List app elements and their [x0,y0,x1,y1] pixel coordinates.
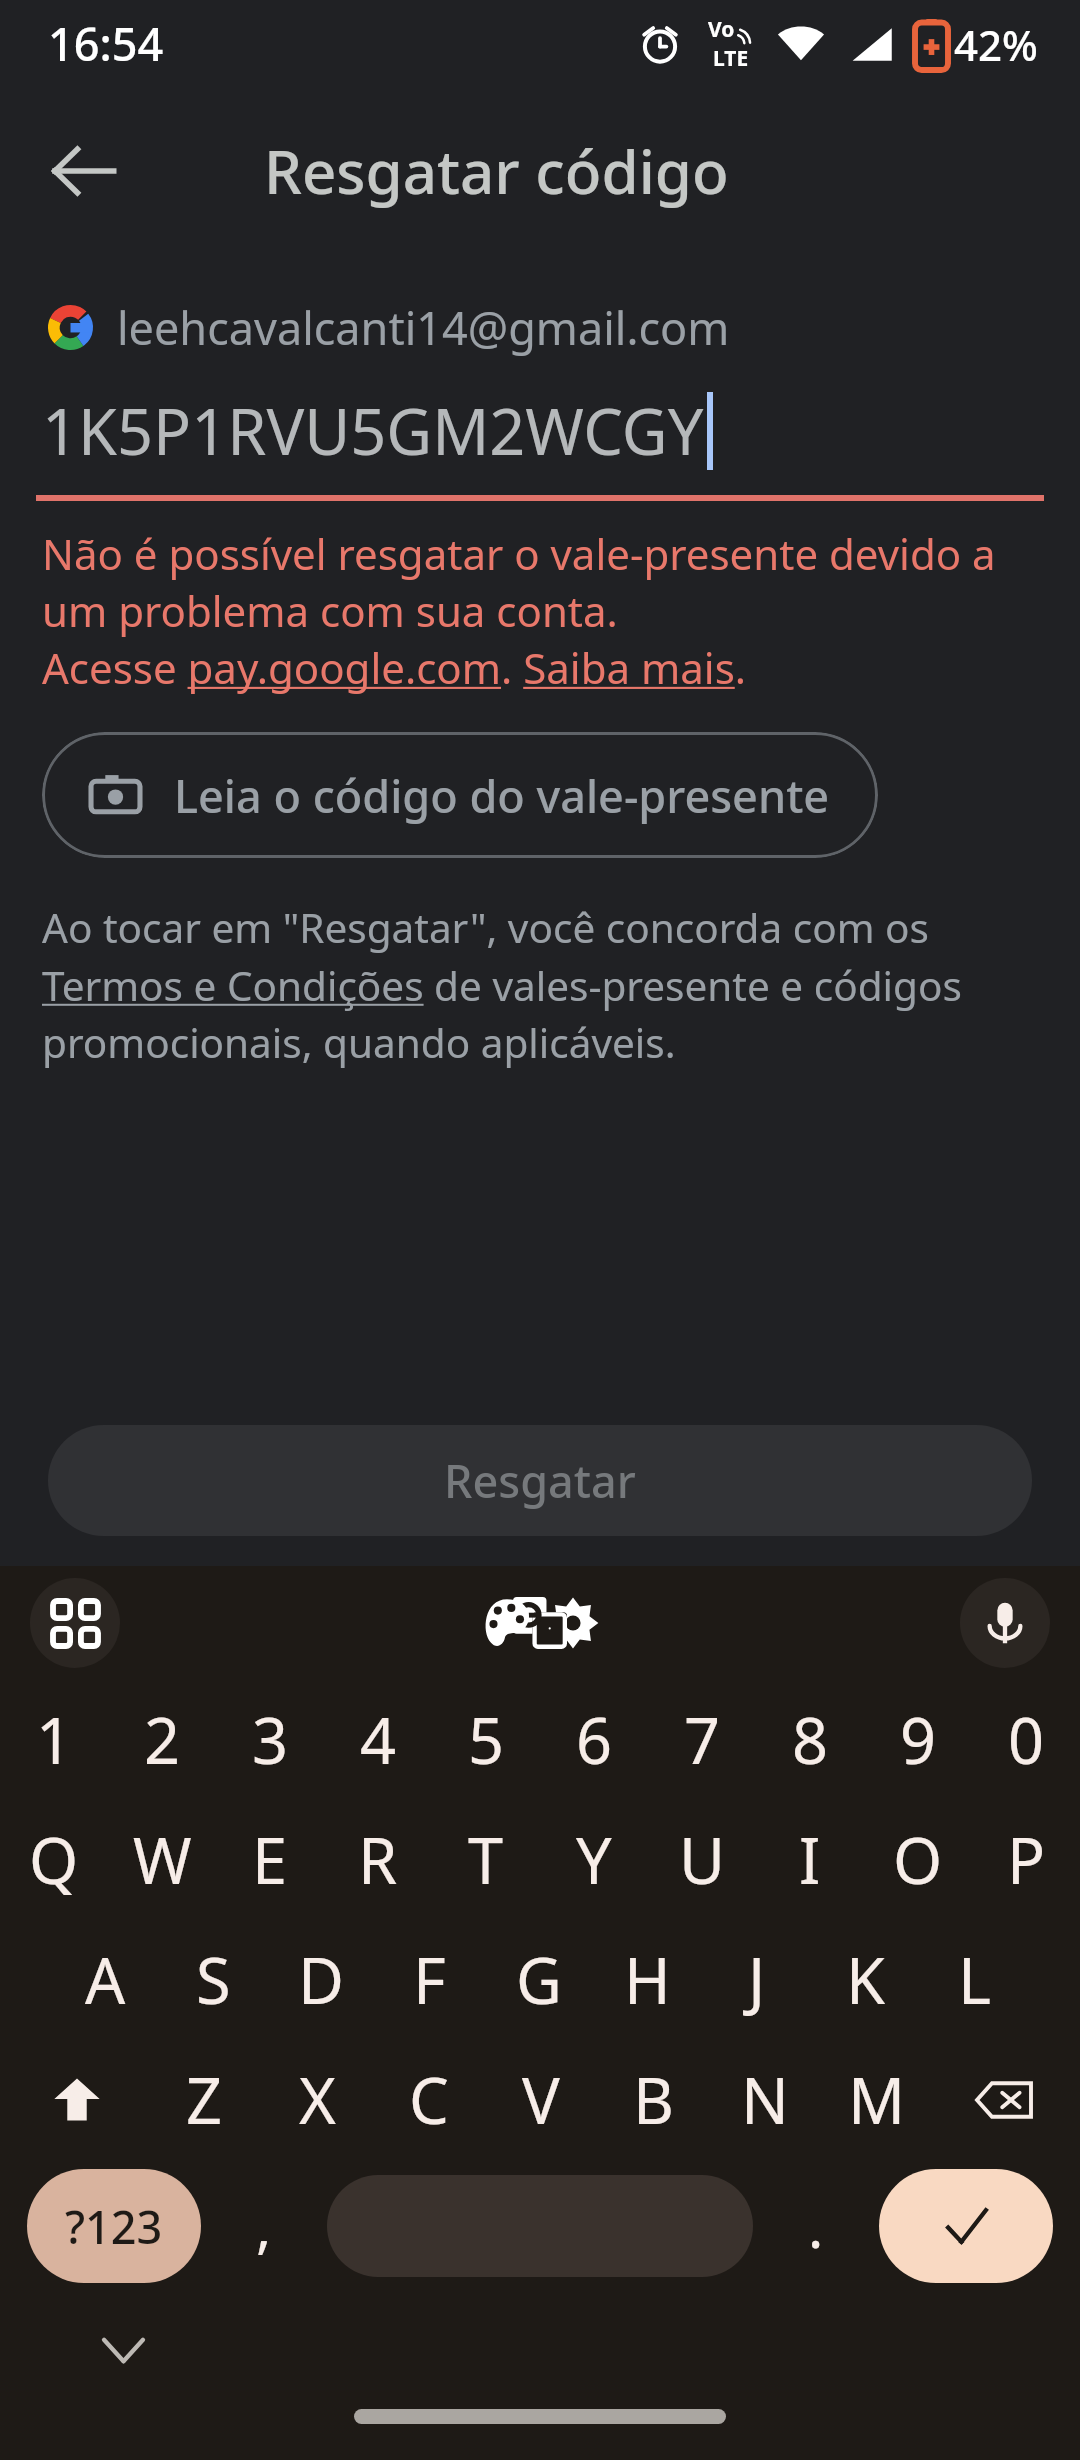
button[interactable]: . [753,2160,879,2292]
button[interactable]: V [485,2040,597,2160]
button[interactable]: Enter [879,2169,1053,2283]
button[interactable]: 2 [108,1680,216,1800]
staticText: leehcavalcanti14@gmail.com [117,297,730,358]
staticText: D [298,1937,344,2023]
button[interactable]: ?123 [27,2169,201,2283]
staticText: L [958,1937,992,2023]
button[interactable]: 9 [864,1680,972,1800]
button[interactable]: Leia o código do vale-presente [42,732,878,858]
button[interactable]: E [216,1800,324,1920]
staticText: Resgatar código [264,130,729,212]
button[interactable]: Translate [492,1575,588,1671]
button[interactable]: Voice input [960,1578,1050,1668]
button[interactable]: J [702,1920,811,2040]
button[interactable]: 0 [972,1680,1080,1800]
staticText: Q [29,1817,79,1903]
button[interactable]: Y [540,1800,648,1920]
staticText: 42% [954,16,1038,73]
staticText: 8 [792,1697,829,1783]
button[interactable]: T [432,1800,540,1920]
button[interactable]: H [593,1920,702,2040]
staticText: J [748,1937,766,2023]
staticText: C [409,2057,449,2143]
staticText: 2 [144,1697,181,1783]
button[interactable]: Hide keyboard [84,2310,162,2388]
button[interactable]: Space [327,2175,753,2277]
staticText: 7 [684,1697,721,1783]
button[interactable]: 6 [540,1680,648,1800]
staticText: H [624,1937,671,2023]
staticText: 0 [1008,1697,1045,1783]
staticText: Leia o código do vale-presente [174,765,830,826]
staticText: ?123 [65,2196,163,2257]
button[interactable]: Theme [459,1575,555,1671]
button[interactable]: W [108,1800,216,1920]
button[interactable]: Q [0,1800,108,1920]
staticText: N [741,2057,789,2143]
button[interactable]: N [709,2040,821,2160]
button[interactable]: 8 [756,1680,864,1800]
button[interactable]: 1 [0,1680,108,1800]
staticText: M [848,2057,906,2143]
button[interactable]: Shift [6,2040,148,2160]
staticText: G [516,1937,562,2023]
button[interactable]: 4 [324,1680,432,1800]
button[interactable]: R [324,1800,432,1920]
button[interactable]: L [920,1920,1029,2040]
staticText: V [522,2057,560,2143]
button[interactable]: F [375,1920,484,2040]
button[interactable]: X [261,2040,373,2160]
staticText: Y [576,1817,612,1903]
button[interactable]: Z [148,2040,261,2160]
button[interactable]: 5 [432,1680,540,1800]
button[interactable]: K [811,1920,920,2040]
button[interactable]: B [597,2040,709,2160]
button[interactable]: 3 [216,1680,324,1800]
staticText: 4 [360,1697,397,1783]
staticText: X [299,2057,336,2143]
staticText: K [846,1937,885,2023]
staticText: 5 [468,1697,505,1783]
staticText: B [633,2057,674,2143]
staticText: . [808,2187,824,2265]
button[interactable]: 7 [648,1680,756,1800]
button[interactable]: Resgatar [48,1425,1032,1536]
staticText: 16:54 [48,13,164,74]
button[interactable]: U [648,1800,756,1920]
button[interactable]: A [51,1920,159,2040]
button[interactable]: O [864,1800,972,1920]
staticText: Ao tocar em "Resgatar", você concorda co… [42,900,1038,1070]
staticText: Z [186,2057,223,2143]
button[interactable]: D [267,1920,375,2040]
staticText: Resgatar [444,1450,636,1511]
staticText: F [413,1937,446,2023]
staticText: W [133,1817,192,1903]
button[interactable]: S [159,1920,267,2040]
staticText: S [196,1937,231,2023]
staticText: 1K5P1RVU5GM2WCGY [42,388,704,474]
staticText: 9 [900,1697,937,1783]
button[interactable]: P [972,1800,1080,1920]
staticText: A [85,1937,126,2023]
staticText: T [468,1817,504,1903]
staticText: U [679,1817,726,1903]
button[interactable]: , [201,2160,327,2292]
staticText: Vo [708,15,735,44]
staticText: Não é possível resgatar o vale-presente … [42,525,1038,696]
staticText: R [358,1817,398,1903]
staticText: E [252,1817,288,1903]
button[interactable]: C [373,2040,485,2160]
button[interactable]: Backspace [933,2040,1074,2160]
button[interactable]: Settings [525,1575,621,1671]
staticText: O [893,1817,943,1903]
button[interactable]: Keyboard apps [30,1578,120,1668]
button[interactable]: Back [12,99,156,243]
staticText: P [1007,1817,1046,1903]
staticText: I [799,1817,821,1903]
staticText: 6 [576,1697,613,1783]
staticText: LTE [713,44,749,73]
button[interactable]: M [821,2040,933,2160]
button[interactable]: I [756,1800,864,1920]
button[interactable]: G [484,1920,593,2040]
staticText: , [256,2187,272,2265]
